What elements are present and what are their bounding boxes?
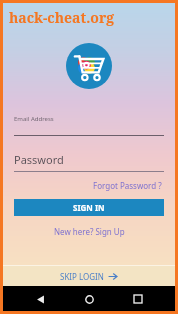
button[interactable]: SIGN IN bbox=[14, 199, 164, 216]
staticText: Email Address bbox=[14, 115, 54, 123]
staticText: Password bbox=[14, 152, 64, 167]
staticText: hack-cheat.org bbox=[9, 8, 115, 27]
button[interactable]: Password bbox=[14, 152, 164, 172]
button[interactable]: SKIP LOGIN bbox=[3, 266, 175, 286]
button[interactable]: Back bbox=[28, 287, 52, 311]
button[interactable]: Recents bbox=[126, 287, 150, 311]
button[interactable]: Home bbox=[77, 287, 101, 311]
button[interactable]: Email Address bbox=[14, 115, 164, 136]
other: Shopping cart logo bbox=[73, 50, 105, 82]
button[interactable]: New here? Sign Up bbox=[52, 224, 127, 239]
staticText: SIGN IN bbox=[73, 202, 105, 213]
button[interactable]: Forgot Password ? bbox=[91, 178, 164, 193]
staticText: SKIP LOGIN bbox=[60, 271, 104, 282]
